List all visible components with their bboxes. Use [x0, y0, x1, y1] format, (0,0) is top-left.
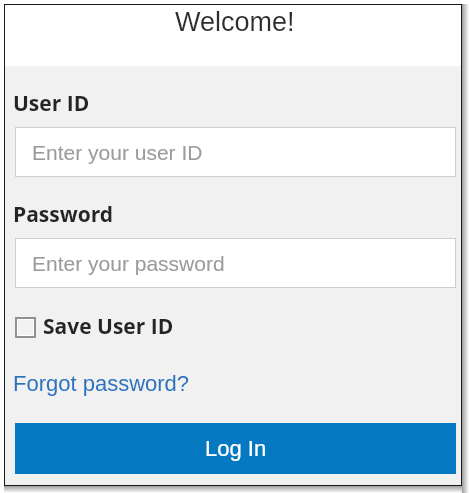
- staticText: Enter your password: [32, 252, 225, 275]
- staticText: Log In: [205, 436, 267, 461]
- staticText: Save User ID: [43, 312, 174, 341]
- staticText: Enter your user ID: [32, 141, 203, 164]
- staticText: Password: [13, 200, 114, 229]
- button[interactable]: Save User ID checkbox: [15, 313, 174, 342]
- other: Save User ID checkbox: [15, 317, 36, 338]
- button[interactable]: Log In: [15, 423, 456, 474]
- button[interactable]: Enter your user ID: [15, 127, 456, 177]
- staticText: Forgot password?: [13, 371, 190, 396]
- button[interactable]: Enter your password: [15, 238, 456, 288]
- staticText: User ID: [13, 89, 90, 118]
- staticText: Welcome!: [175, 7, 295, 37]
- button[interactable]: Forgot password?: [13, 371, 190, 396]
